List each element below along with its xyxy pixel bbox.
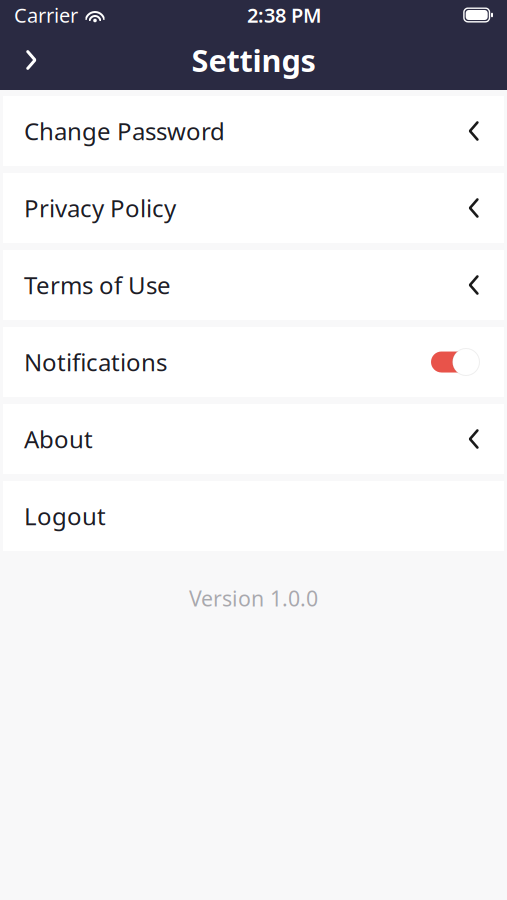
button[interactable]: Back	[8, 36, 54, 84]
staticText: Notifications	[24, 346, 167, 378]
button[interactable]: Privacy Policy	[3, 173, 504, 243]
button[interactable]: Terms of Use	[3, 250, 504, 320]
button[interactable]: Logout	[3, 481, 504, 551]
staticText: Version 1.0.0	[189, 584, 318, 612]
staticText: Change Password	[24, 115, 225, 147]
staticText: Logout	[24, 500, 106, 532]
staticText: Privacy Policy	[24, 192, 176, 224]
button[interactable]: Change Password	[3, 96, 504, 166]
staticText: About	[24, 423, 93, 455]
button[interactable]: Notifications	[3, 327, 504, 397]
staticText: Settings	[191, 40, 315, 80]
staticText: Carrier	[14, 2, 78, 28]
staticText: Terms of Use	[24, 269, 171, 301]
staticText: 2:38 PM	[247, 2, 322, 28]
button[interactable]: About	[3, 404, 504, 474]
